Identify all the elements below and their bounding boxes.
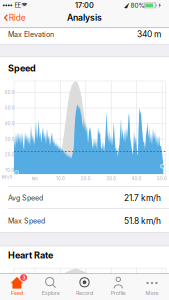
staticText: 20.0 <box>5 152 15 157</box>
staticText: 30.0 <box>5 136 15 142</box>
staticText: Max Elevation <box>8 30 54 39</box>
staticText: 17:00 <box>75 1 94 10</box>
staticText: 10.0 <box>56 176 65 181</box>
staticText: Analysis <box>67 12 102 23</box>
staticText: Ride <box>9 12 26 23</box>
staticText: 40.0 <box>132 176 142 181</box>
staticText: km/h <box>2 174 13 180</box>
staticText: Avg Speed <box>8 194 43 202</box>
staticText: 60.0 <box>5 90 15 95</box>
staticText: 30.0 <box>106 176 116 181</box>
staticText: 50.0 <box>5 105 15 111</box>
staticText: Feed <box>11 290 23 296</box>
staticText: 50.0 <box>157 176 167 181</box>
staticText: Max Speed <box>8 217 45 225</box>
staticText: More <box>146 290 159 296</box>
staticText: 340 m <box>137 29 161 39</box>
staticText: Record <box>76 290 93 296</box>
staticText: 3 <box>22 274 25 281</box>
staticText: 10.0 <box>5 168 14 173</box>
staticText: km <box>32 176 38 181</box>
staticText: Heart Rate <box>8 250 53 261</box>
staticText: Speed <box>8 63 36 74</box>
staticText: 80% <box>130 1 144 9</box>
staticText: 20.0 <box>81 176 91 181</box>
staticText: EE <box>14 2 20 9</box>
staticText: 21.7 km/h <box>124 193 161 203</box>
staticText: 40.0 <box>5 121 15 126</box>
staticText: Profile <box>111 290 126 296</box>
staticText: Explore <box>42 290 60 296</box>
staticText: 51.8 km/h <box>124 216 161 226</box>
